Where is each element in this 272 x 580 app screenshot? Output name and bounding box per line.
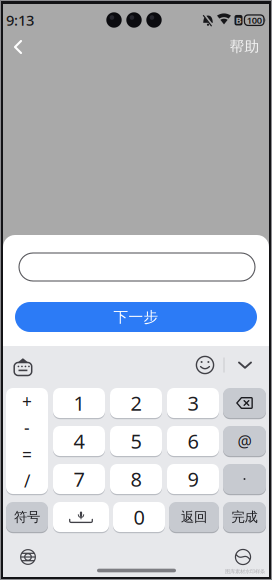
staticText: / [24,469,30,492]
staticText: 帮助 [229,37,259,55]
button[interactable]: 符号列 [6,387,48,495]
staticText: 9:13 [6,10,34,30]
button[interactable]: 7 [53,463,105,495]
button[interactable]: 输入框 [19,253,255,281]
button[interactable]: 6 [167,425,219,457]
staticText: 2 [130,390,141,416]
button[interactable]: 帮助 [226,34,262,58]
button[interactable]: 表情 [196,356,214,374]
button[interactable]: 1 [53,387,105,419]
button[interactable]: 完成 [223,501,266,533]
button[interactable]: 收起键盘 [238,361,252,369]
button[interactable]: · [223,463,266,495]
button[interactable]: 4 [53,425,105,457]
button[interactable]: 键盘设置 [14,354,32,376]
staticText: 8 [130,466,141,492]
staticText: 3 [187,390,198,416]
staticText: 下一步 [113,308,158,326]
staticText: 返回 [181,509,207,525]
staticText: = [22,443,32,466]
button[interactable]: 5 [110,425,162,457]
staticText: 4 [73,428,84,454]
staticText: 5 [130,428,141,454]
staticText: 6 [187,428,198,454]
button[interactable]: 2 [110,387,162,419]
button[interactable]: 切换输入法 [235,549,251,565]
button[interactable]: 3 [167,387,219,419]
button[interactable]: 语音输入 [53,501,109,533]
button[interactable]: 符号 [6,501,48,533]
staticText: 100 [247,14,262,26]
staticText: 0 [133,504,144,530]
button[interactable]: @ [223,425,266,457]
button[interactable]: 切换语言 [20,549,36,565]
staticText: + [22,390,32,413]
staticText: - [24,416,30,439]
staticText: 7 [73,466,84,492]
button[interactable]: 删除 [223,387,266,419]
staticText: 图库素材水印样条 [225,568,265,575]
button[interactable]: 返回 [169,501,219,533]
button[interactable]: 9 [167,463,219,495]
button[interactable]: 8 [110,463,162,495]
staticText: B [235,14,241,26]
staticText: @ [237,430,251,452]
staticText: 符号 [14,509,40,525]
button[interactable]: 0 [113,501,165,533]
button[interactable]: 返回 [2,32,32,61]
staticText: 9 [187,466,198,492]
button[interactable]: 下一步 [15,302,257,332]
staticText: 完成 [231,509,257,525]
staticText: 1 [73,390,84,416]
